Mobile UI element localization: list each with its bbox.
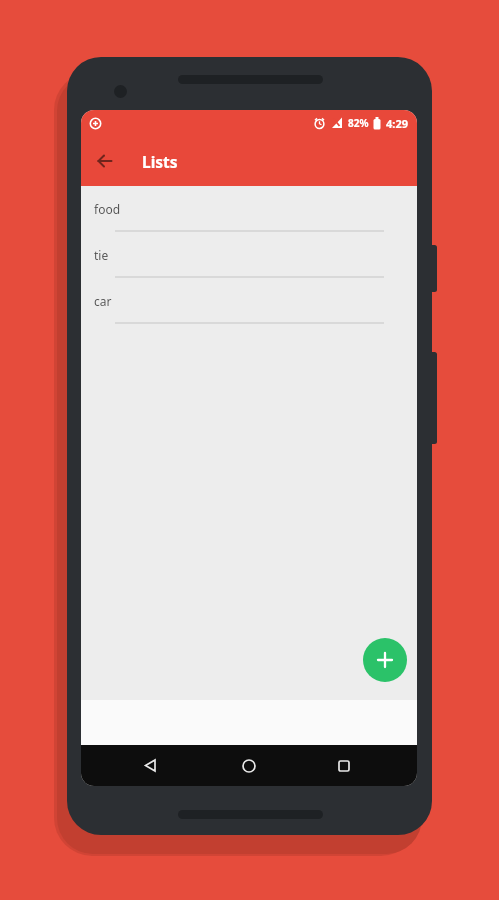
staticText: Lists — [142, 151, 178, 172]
staticText: food — [94, 201, 121, 217]
button[interactable]: car — [81, 278, 417, 324]
button[interactable] — [363, 638, 407, 682]
staticText: car — [94, 293, 112, 309]
staticText: 4:29 — [386, 116, 408, 131]
staticText: 82% — [348, 116, 369, 130]
button[interactable] — [229, 745, 269, 786]
button[interactable]: tie — [81, 232, 417, 278]
staticText: tie — [94, 247, 109, 263]
button[interactable] — [324, 745, 364, 786]
button[interactable] — [130, 745, 170, 786]
button[interactable] — [81, 137, 129, 185]
button[interactable]: food — [81, 186, 417, 232]
